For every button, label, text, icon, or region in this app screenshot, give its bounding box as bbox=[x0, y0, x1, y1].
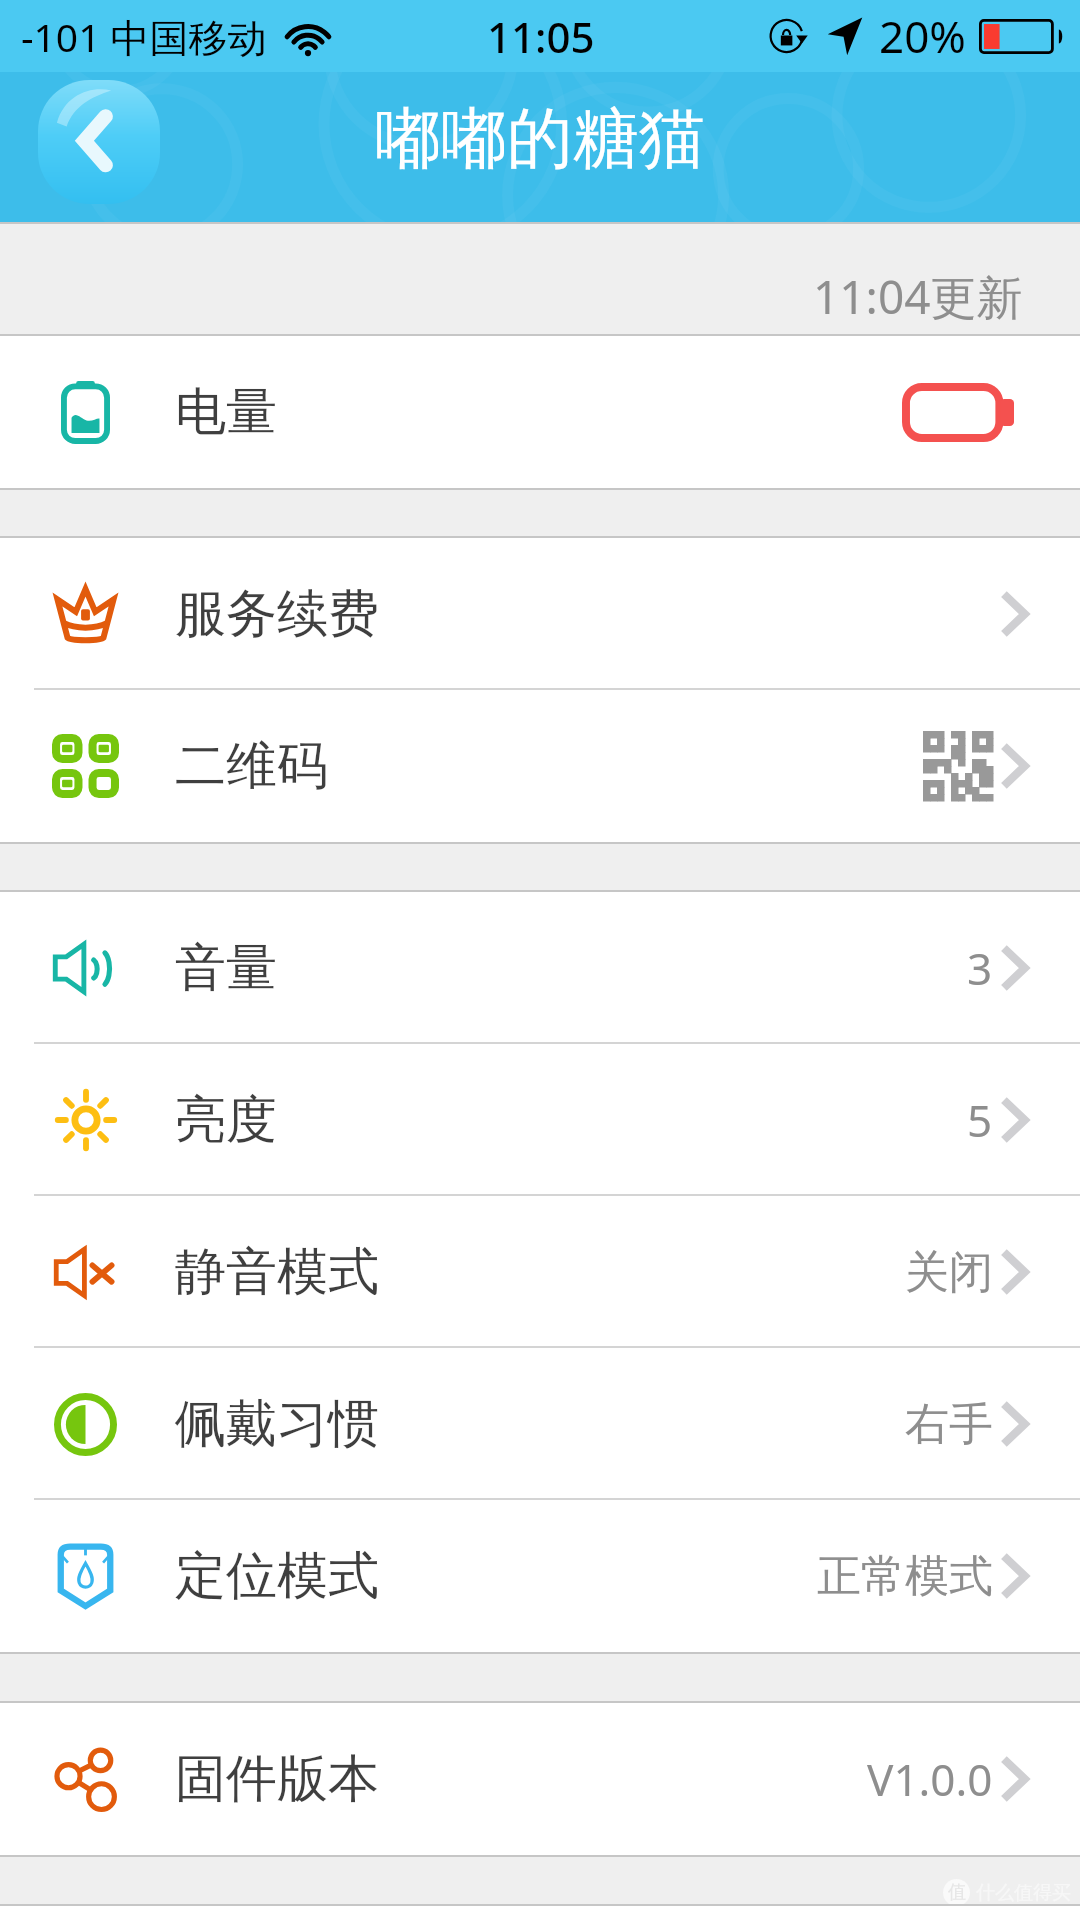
staticText: 静音模式 bbox=[175, 1240, 379, 1304]
staticText: -101 中国移动 bbox=[21, 10, 267, 63]
button[interactable]: Back bbox=[38, 80, 160, 204]
staticText: 佩戴习惯 bbox=[175, 1392, 379, 1456]
staticText: 服务续费 bbox=[175, 582, 379, 646]
staticText: 音量 bbox=[175, 936, 277, 1000]
staticText: 嘟嘟的糖猫 bbox=[375, 97, 705, 180]
staticText: 亮度 bbox=[175, 1088, 277, 1152]
staticText: 关闭 bbox=[905, 1245, 993, 1300]
button[interactable]: 固件版本 bbox=[0, 1703, 1080, 1855]
staticText: V1.0.0 bbox=[867, 1749, 993, 1809]
button[interactable]: 佩戴习惯 bbox=[0, 1348, 1080, 1500]
button[interactable]: 二维码 bbox=[0, 690, 1080, 842]
button[interactable]: 定位模式 bbox=[0, 1500, 1080, 1652]
button[interactable]: 静音模式 bbox=[0, 1196, 1080, 1348]
staticText: 11:04更新 bbox=[813, 265, 1023, 328]
button[interactable]: 音量 bbox=[0, 892, 1080, 1044]
staticText: 二维码 bbox=[175, 734, 328, 798]
staticText: 正常模式 bbox=[817, 1549, 993, 1604]
staticText: 什么值得买 bbox=[976, 1881, 1071, 1905]
button[interactable]: 电量 bbox=[0, 336, 1080, 488]
staticText: 11:05 bbox=[487, 8, 595, 65]
staticText: 值 bbox=[948, 1881, 966, 1904]
staticText: 右手 bbox=[905, 1397, 993, 1452]
staticText: 定位模式 bbox=[175, 1544, 379, 1608]
staticText: 电量 bbox=[175, 380, 277, 444]
staticText: 3 bbox=[967, 938, 993, 998]
staticText: 固件版本 bbox=[175, 1747, 379, 1811]
button[interactable]: 亮度 bbox=[0, 1044, 1080, 1196]
staticText: 5 bbox=[967, 1090, 993, 1150]
staticText: 20% bbox=[879, 6, 966, 66]
button[interactable]: 服务续费 bbox=[0, 538, 1080, 690]
